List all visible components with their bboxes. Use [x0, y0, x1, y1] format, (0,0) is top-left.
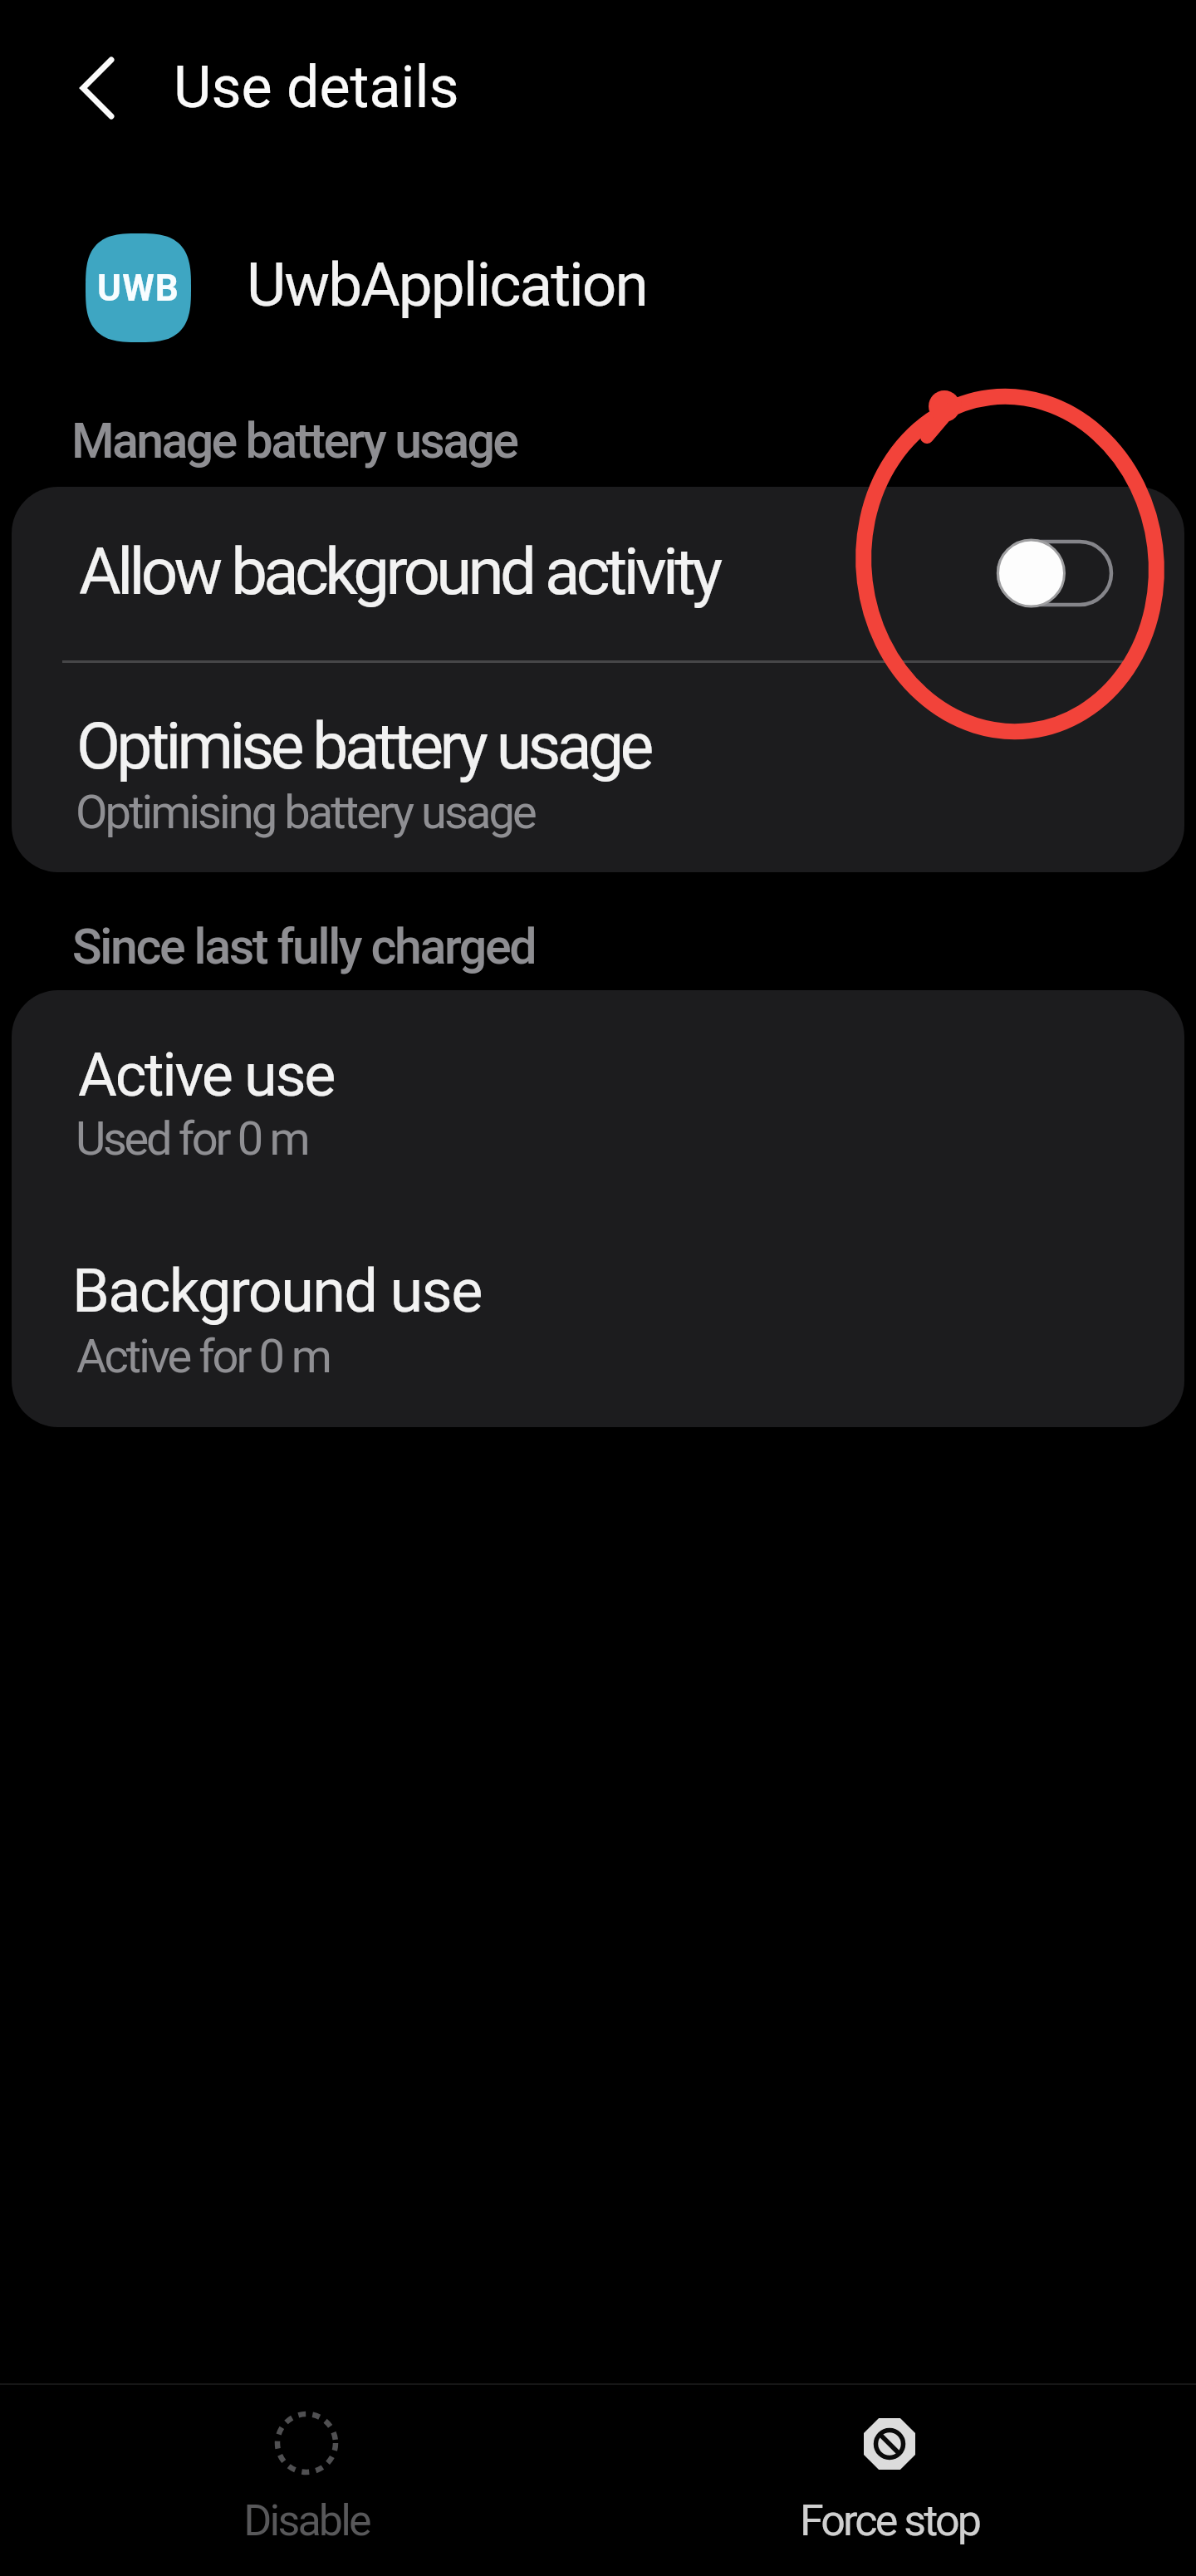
staticText: Allow background activity — [79, 534, 719, 610]
button[interactable] — [993, 535, 1118, 615]
button[interactable] — [12, 663, 1184, 872]
button[interactable] — [12, 1209, 1184, 1427]
staticText: UwbApplication — [247, 249, 647, 321]
staticText: Optimise battery usage — [76, 709, 650, 784]
staticText: Disable — [182, 2495, 431, 2546]
staticText: Force stop — [765, 2495, 1014, 2546]
button[interactable] — [55, 47, 138, 130]
staticText: Optimising battery usage — [76, 785, 535, 840]
staticText: Active use — [78, 1040, 335, 1110]
staticText: UWB — [97, 267, 180, 310]
staticText: Active for 0 m — [76, 1329, 330, 1384]
button[interactable]: Force stop — [765, 2392, 1014, 2559]
staticText: Use details — [174, 53, 459, 121]
staticText: Manage battery usage — [71, 412, 517, 469]
button[interactable] — [12, 487, 1184, 663]
button[interactable] — [12, 990, 1184, 1209]
button[interactable]: Disable — [182, 2392, 431, 2559]
staticText: Since last fully charged — [72, 918, 536, 975]
staticText: Background use — [72, 1256, 482, 1326]
staticText: Used for 0 m — [76, 1111, 308, 1166]
